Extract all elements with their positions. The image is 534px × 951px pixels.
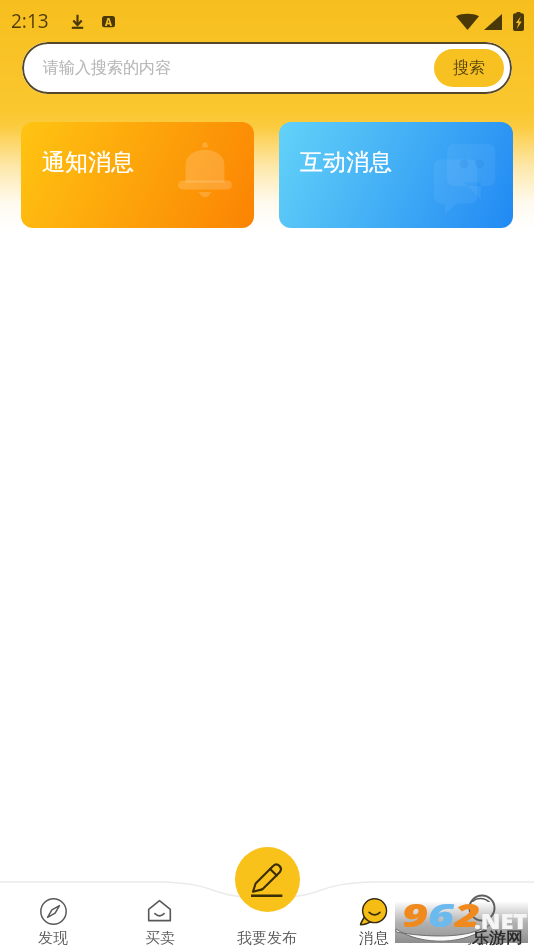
button[interactable]: 互动消息 <box>279 122 513 228</box>
button[interactable]: 发现 <box>0 881 106 951</box>
button[interactable]: 消息 <box>320 881 427 951</box>
staticText: 2:13 <box>11 8 49 34</box>
staticText: .NET <box>474 907 528 936</box>
staticText: 互动消息 <box>300 148 392 177</box>
staticText: 我的 <box>466 929 496 948</box>
staticText: 9 <box>402 894 428 935</box>
staticText: 搜索 <box>453 58 485 78</box>
staticText: 乐游网 <box>472 929 522 948</box>
button[interactable]: 请输入搜索的内容 <box>22 42 512 94</box>
button[interactable]: 我要发布 <box>213 881 320 951</box>
staticText: 买卖 <box>145 929 175 948</box>
button[interactable]: 我的 <box>427 881 534 951</box>
staticText: 我要发布 <box>237 929 297 948</box>
staticText: 2 <box>454 894 480 935</box>
staticText: A <box>105 15 112 28</box>
button[interactable]: 搜索 <box>434 49 504 87</box>
button[interactable]: 通知消息 <box>21 122 254 228</box>
staticText: 发现 <box>38 929 68 948</box>
staticText: 请输入搜索的内容 <box>43 58 171 78</box>
button[interactable]: 我要发布 <box>235 847 300 912</box>
staticText: 6 <box>428 894 454 935</box>
staticText: 通知消息 <box>42 148 134 177</box>
button[interactable]: 买卖 <box>106 881 213 951</box>
staticText: 消息 <box>359 929 389 948</box>
